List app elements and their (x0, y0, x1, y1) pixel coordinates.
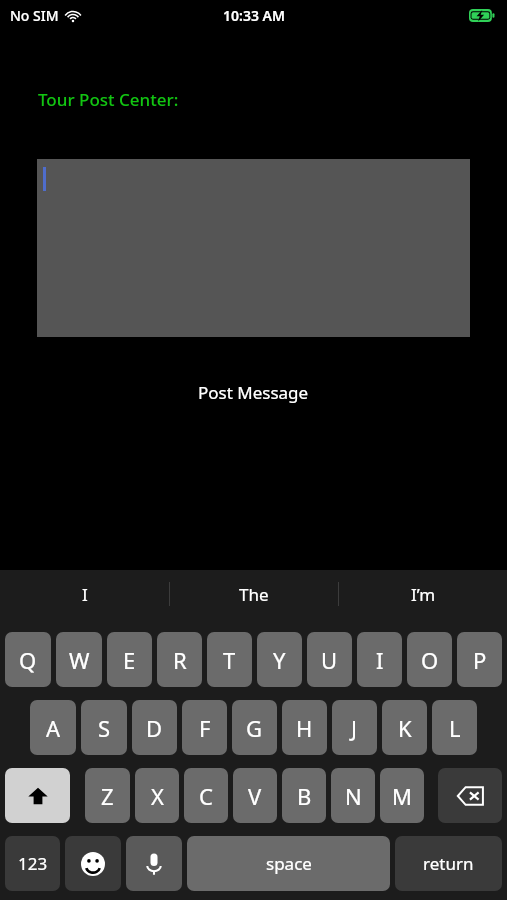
button[interactable]: T (207, 632, 252, 687)
staticText: Q (19, 645, 37, 675)
staticText: C (199, 781, 213, 811)
button[interactable]: Z (85, 768, 130, 823)
button[interactable]: L (432, 700, 477, 755)
staticText: D (146, 713, 163, 743)
staticText: H (296, 713, 313, 743)
staticText: M (392, 781, 412, 811)
button[interactable]: Y (257, 632, 302, 687)
button[interactable]: X (135, 768, 179, 823)
staticText: K (398, 713, 412, 743)
button[interactable]: 123 (5, 836, 60, 891)
staticText: Tour Post Center: (38, 88, 179, 111)
staticText: return (423, 852, 474, 875)
staticText: I (376, 645, 384, 675)
staticText: I (82, 583, 88, 606)
staticText: T (223, 645, 236, 675)
button[interactable]: Emoji (65, 836, 121, 891)
staticText: G (246, 713, 263, 743)
staticText: W (69, 645, 90, 675)
staticText: E (123, 645, 136, 675)
button[interactable]: N (331, 768, 375, 823)
staticText: S (98, 713, 111, 743)
staticText: F (199, 713, 211, 743)
button[interactable]: R (157, 632, 202, 687)
staticText: B (297, 781, 312, 811)
button[interactable]: M (380, 768, 424, 823)
button[interactable]: S (81, 700, 127, 755)
button[interactable]: U (307, 632, 352, 687)
button[interactable]: B (282, 768, 326, 823)
staticText: Y (273, 645, 286, 675)
staticText: I’m (411, 583, 436, 606)
staticText: L (449, 713, 461, 743)
staticText: V (248, 781, 262, 811)
button[interactable]: Post Message (186, 375, 321, 410)
button[interactable]: E (107, 632, 152, 687)
staticText: 10:33 AM (223, 6, 285, 25)
button[interactable]: J (332, 700, 377, 755)
staticText: N (345, 781, 362, 811)
staticText: Z (101, 781, 114, 811)
staticText: R (173, 645, 187, 675)
button[interactable]: Q (5, 632, 51, 687)
button[interactable]: G (232, 700, 277, 755)
button[interactable]: I (0, 570, 169, 618)
staticText: A (46, 713, 61, 743)
staticText: J (351, 713, 358, 743)
staticText: space (266, 852, 312, 875)
button[interactable]: C (184, 768, 228, 823)
button[interactable]: I (357, 632, 402, 687)
button[interactable]: I’m (339, 570, 507, 618)
staticText: 123 (18, 852, 48, 875)
button[interactable]: F (182, 700, 227, 755)
staticText: O (421, 645, 439, 675)
button[interactable]: space (187, 836, 390, 891)
button[interactable]: Voice input (126, 836, 182, 891)
button[interactable] (37, 159, 470, 337)
button[interactable]: K (382, 700, 427, 755)
button[interactable]: P (457, 632, 502, 687)
button[interactable]: Backspace (438, 768, 502, 823)
button[interactable]: The (170, 570, 338, 618)
button[interactable]: A (30, 700, 76, 755)
button[interactable]: O (407, 632, 452, 687)
button[interactable]: W (56, 632, 102, 687)
button[interactable]: H (282, 700, 327, 755)
staticText: P (473, 645, 487, 675)
button[interactable]: V (233, 768, 277, 823)
staticText: U (321, 645, 338, 675)
staticText: The (239, 583, 269, 606)
staticText: No SIM (10, 6, 59, 25)
button[interactable]: Shift (5, 768, 70, 823)
staticText: X (151, 781, 164, 811)
button[interactable]: D (132, 700, 177, 755)
staticText: Post Message (198, 381, 309, 404)
button[interactable]: return (395, 836, 502, 891)
